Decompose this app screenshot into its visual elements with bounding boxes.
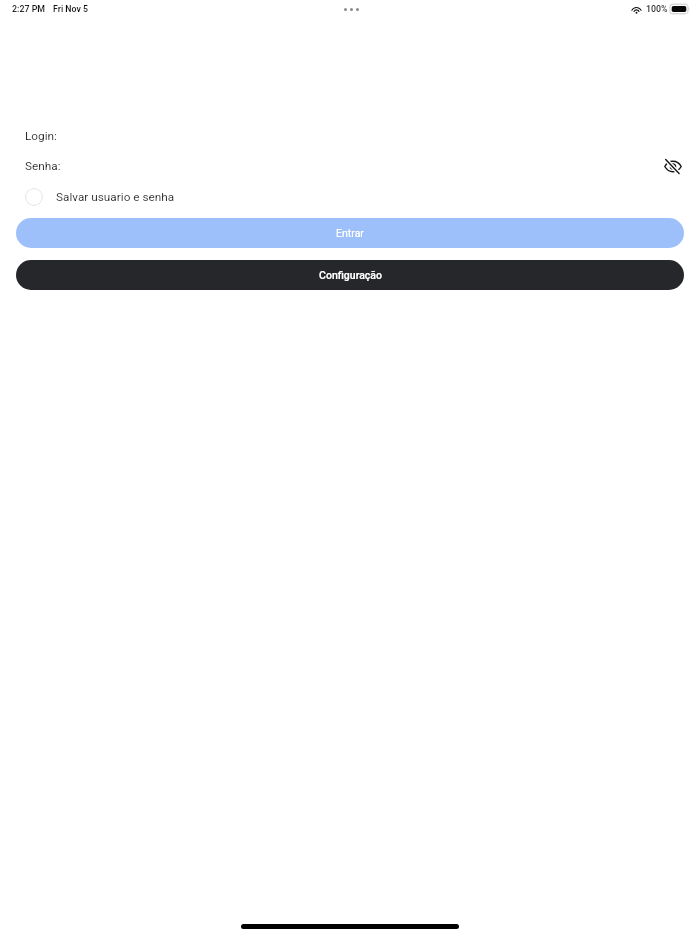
staticText: Login:: [25, 129, 57, 143]
button[interactable]: Mostrar senha: [661, 154, 685, 178]
button[interactable]: Entrar: [16, 218, 684, 248]
staticText: 100%: [646, 4, 668, 14]
staticText: Fri Nov 5: [53, 4, 89, 14]
staticText: Entrar: [336, 227, 364, 239]
button[interactable]: Configuração: [16, 260, 684, 290]
button[interactable]: Salvar usuario e senha: [25, 188, 175, 206]
staticText: Salvar usuario e senha: [56, 190, 175, 204]
staticText: Senha:: [25, 159, 61, 173]
staticText: 2:27 PM: [12, 4, 46, 14]
staticText: Configuração: [319, 269, 382, 281]
